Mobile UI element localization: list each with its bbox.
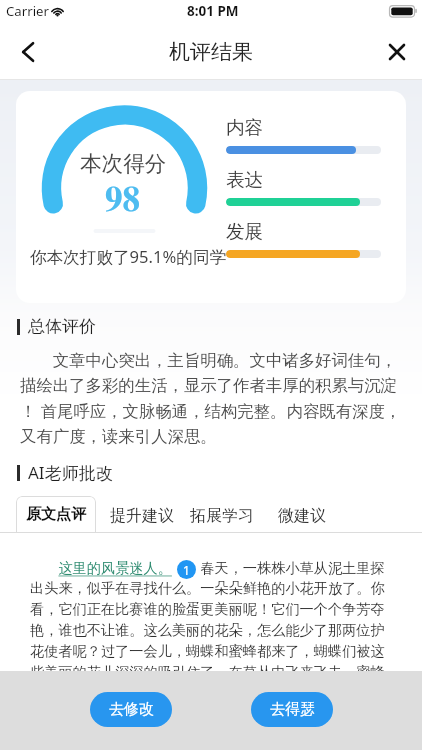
- button[interactable]: Back: [9, 33, 47, 71]
- staticText: 拓展学习: [190, 506, 254, 526]
- button[interactable]: 提升建议: [102, 499, 182, 533]
- staticText: 微建议: [278, 506, 326, 526]
- button[interactable]: Close: [378, 33, 416, 71]
- staticText: 总体评价: [28, 316, 96, 337]
- staticText: 发展: [226, 220, 264, 243]
- button[interactable]: 原文点评: [16, 496, 96, 533]
- staticText: 提升建议: [110, 506, 174, 526]
- staticText: 8:01 PM: [187, 2, 239, 20]
- staticText: Carrier: [6, 2, 49, 20]
- button[interactable]: 去得瑟: [251, 692, 333, 727]
- staticText: AI老师批改: [28, 461, 113, 484]
- staticText: 文章中心突出，主旨明确。文中诸多好词佳句， 描绘出了多彩的生活，显示了作者丰厚的…: [20, 348, 402, 447]
- staticText: 原文点评: [26, 505, 86, 524]
- staticText: 98: [105, 183, 141, 218]
- button[interactable]: 去修改: [90, 692, 172, 727]
- staticText: 这里的风景迷人。 春天，一株株小草从泥土里探 出头来，似乎在寻找什么。一朵朵鲜艳…: [30, 558, 385, 671]
- button[interactable]: 微建议: [262, 499, 342, 533]
- staticText: 表达: [226, 168, 264, 191]
- staticText: 内容: [226, 116, 264, 139]
- staticText: 去修改: [109, 700, 154, 719]
- staticText: 你本次打败了95.1%的同学: [30, 245, 227, 268]
- staticText: 机评结果: [169, 39, 253, 65]
- staticText: 1: [183, 562, 190, 578]
- button[interactable]: 拓展学习: [182, 499, 262, 533]
- staticText: 去得瑟: [270, 700, 315, 719]
- staticText: 本次得分: [80, 150, 167, 177]
